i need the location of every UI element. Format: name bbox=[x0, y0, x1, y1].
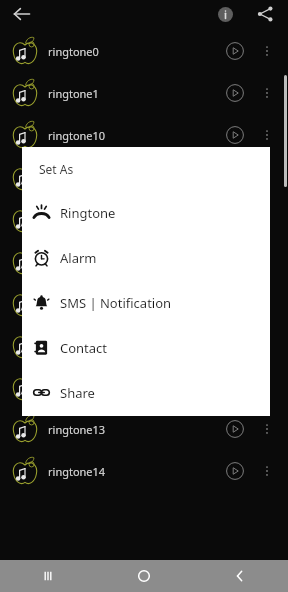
button[interactable]: ringtone0 bbox=[0, 30, 288, 72]
button[interactable]: More options bbox=[252, 78, 282, 108]
button[interactable]: Play bbox=[0, 240, 288, 282]
button[interactable]: More options bbox=[252, 36, 282, 66]
staticText: Set As bbox=[39, 161, 74, 177]
staticText: Ringtone bbox=[60, 204, 116, 222]
staticText: ringtone13 bbox=[48, 422, 106, 437]
button[interactable]: Alarm bbox=[22, 235, 270, 280]
button[interactable]: Play bbox=[218, 76, 252, 110]
button[interactable]: Play bbox=[218, 118, 252, 152]
staticText: Alarm bbox=[60, 249, 97, 267]
button[interactable]: Info bbox=[210, 0, 240, 28]
button[interactable]: Contact bbox=[22, 325, 270, 370]
button[interactable]: Home bbox=[96, 560, 192, 592]
button[interactable]: More options bbox=[252, 120, 282, 150]
staticText: SMS | Notification bbox=[60, 294, 172, 312]
button[interactable]: Recent apps bbox=[0, 560, 96, 592]
staticText: Share bbox=[60, 384, 95, 402]
staticText: ringtone12 bbox=[48, 380, 106, 395]
button[interactable]: More options bbox=[252, 456, 282, 486]
button[interactable]: Play bbox=[218, 34, 252, 68]
button[interactable]: Share bbox=[250, 0, 280, 28]
button[interactable]: More options bbox=[252, 414, 282, 444]
button[interactable]: ringtone14 bbox=[0, 450, 288, 492]
button[interactable]: SMS | Notification bbox=[22, 280, 270, 325]
button[interactable]: Play bbox=[0, 198, 288, 240]
button[interactable]: ringtone1 bbox=[0, 72, 288, 114]
button[interactable]: Back bbox=[192, 560, 288, 592]
staticText: ringtone1 bbox=[48, 86, 99, 101]
button[interactable]: ringtone11 bbox=[0, 324, 288, 366]
staticText: ringtone0 bbox=[48, 44, 99, 59]
staticText: ringtone11 bbox=[48, 338, 106, 353]
staticText: ringtone14 bbox=[48, 464, 106, 479]
button[interactable]: More options bbox=[252, 204, 282, 234]
button[interactable]: ringtone13 bbox=[0, 408, 288, 450]
button[interactable]: Play bbox=[0, 156, 288, 198]
button[interactable]: Share bbox=[22, 370, 270, 415]
button[interactable]: More options bbox=[252, 246, 282, 276]
button[interactable]: Back bbox=[6, 0, 38, 28]
button[interactable]: ringtone12 bbox=[0, 366, 288, 408]
staticText: Contact bbox=[60, 339, 108, 357]
button[interactable]: Play bbox=[218, 412, 252, 446]
staticText: ringtone10 bbox=[48, 128, 106, 143]
button[interactable]: Play bbox=[218, 454, 252, 488]
button[interactable]: More options bbox=[252, 330, 282, 360]
button[interactable]: More options bbox=[252, 162, 282, 192]
button[interactable]: ringtone10 bbox=[0, 114, 288, 156]
button[interactable]: Ringtone bbox=[22, 190, 270, 235]
button[interactable]: More options bbox=[252, 288, 282, 318]
button[interactable]: Play bbox=[0, 282, 288, 324]
button[interactable]: More options bbox=[252, 372, 282, 402]
